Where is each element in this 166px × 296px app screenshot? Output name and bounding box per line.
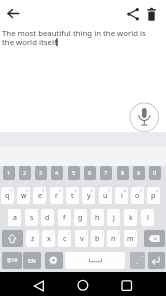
- staticText: 2: [23, 169, 27, 177]
- button[interactable]: [144, 230, 165, 247]
- button[interactable]: [66, 274, 100, 296]
- staticText: 0: [156, 188, 159, 193]
- staticText: f: [63, 213, 66, 223]
- button[interactable]: 2: [19, 166, 31, 180]
- button[interactable]: q: [1, 187, 14, 204]
- staticText: m: [127, 234, 134, 244]
- staticText: ': [152, 210, 153, 215]
- button[interactable]: i: [115, 187, 128, 204]
- button[interactable]: o: [131, 187, 144, 204]
- button[interactable]: [124, 5, 143, 23]
- staticText: v: [80, 234, 84, 244]
- button[interactable]: t: [66, 187, 79, 204]
- staticText: o: [135, 191, 140, 201]
- button[interactable]: 9: [133, 166, 145, 180]
- staticText: .: [136, 256, 139, 266]
- button[interactable]: .: [130, 252, 145, 269]
- staticText: k: [129, 213, 133, 223]
- button[interactable]: [65, 252, 125, 269]
- staticText: p: [151, 191, 156, 201]
- button[interactable]: 6: [84, 166, 96, 180]
- staticText: n: [111, 234, 116, 244]
- button[interactable]: u: [99, 187, 112, 204]
- button[interactable]: 5: [68, 166, 80, 180]
- staticText: l: [147, 213, 149, 223]
- button[interactable]: n: [107, 230, 120, 247]
- button[interactable]: k: [124, 209, 137, 226]
- staticText: ': [36, 210, 37, 215]
- staticText: w: [21, 191, 27, 201]
- staticText: a: [13, 213, 17, 223]
- staticText: @1#: [7, 257, 18, 264]
- button[interactable]: g: [74, 209, 87, 226]
- button[interactable]: p: [147, 187, 160, 204]
- staticText: The most beautiful thing in the world is…: [2, 28, 146, 47]
- staticText: !: [135, 231, 136, 236]
- staticText: u: [103, 191, 108, 201]
- staticText: q: [5, 191, 10, 201]
- button[interactable]: f: [58, 209, 71, 226]
- staticText: s: [30, 213, 34, 223]
- staticText: !: [86, 231, 87, 236]
- button[interactable]: [2, 230, 23, 247]
- button[interactable]: z: [26, 230, 39, 247]
- button[interactable]: s: [25, 209, 38, 226]
- button[interactable]: [45, 252, 63, 269]
- button[interactable]: w: [17, 187, 30, 204]
- staticText: 8: [121, 169, 125, 177]
- staticText: 1: [7, 169, 11, 177]
- button[interactable]: d: [41, 209, 54, 226]
- button[interactable]: [143, 5, 162, 23]
- button[interactable]: 0: [149, 166, 161, 180]
- staticText: 0: [153, 169, 157, 177]
- button[interactable]: [22, 274, 56, 296]
- staticText: x: [47, 234, 51, 244]
- button[interactable]: EN: [23, 252, 41, 269]
- staticText: 1: [10, 188, 13, 193]
- staticText: 5: [75, 188, 78, 193]
- button[interactable]: [130, 103, 159, 132]
- button[interactable]: 8: [117, 166, 129, 180]
- staticText: ...: [141, 253, 144, 258]
- button[interactable]: r: [50, 187, 63, 204]
- button[interactable]: l: [141, 209, 154, 226]
- button[interactable]: m: [124, 230, 137, 247]
- button[interactable]: [0, 147, 166, 167]
- button[interactable]: c: [58, 230, 71, 247]
- button[interactable]: 4: [51, 166, 63, 180]
- staticText: d: [45, 213, 50, 223]
- button[interactable]: e: [33, 187, 46, 204]
- staticText: 6: [88, 169, 92, 177]
- button[interactable]: 1: [3, 166, 15, 180]
- button[interactable]: [4, 5, 24, 23]
- button[interactable]: v: [75, 230, 88, 247]
- staticText: 8: [124, 188, 127, 193]
- button[interactable]: b: [91, 230, 104, 247]
- staticText: ': [102, 210, 103, 215]
- staticText: ': [85, 210, 86, 215]
- button[interactable]: @1#: [2, 252, 22, 269]
- staticText: g: [78, 213, 83, 223]
- staticText: 5: [72, 169, 76, 177]
- staticText: !: [102, 231, 103, 236]
- staticText: b: [95, 234, 100, 244]
- staticText: 6: [91, 188, 94, 193]
- staticText: 9: [140, 188, 143, 193]
- button[interactable]: [110, 274, 144, 296]
- staticText: r: [55, 191, 58, 201]
- button[interactable]: y: [82, 187, 95, 204]
- staticText: !: [37, 231, 38, 236]
- staticText: 2: [26, 188, 29, 193]
- button[interactable]: j: [107, 209, 120, 226]
- staticText: c: [63, 234, 67, 244]
- button[interactable]: a: [8, 209, 21, 226]
- button[interactable]: 7: [100, 166, 112, 180]
- button[interactable]: 3: [35, 166, 47, 180]
- button[interactable]: x: [42, 230, 55, 247]
- button[interactable]: [148, 252, 165, 269]
- staticText: t: [71, 191, 74, 201]
- staticText: e: [38, 191, 42, 201]
- button[interactable]: h: [91, 209, 104, 226]
- staticText: 7: [108, 188, 111, 193]
